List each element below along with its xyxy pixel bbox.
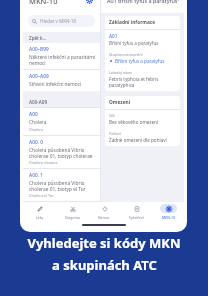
staticText: Léky <box>36 215 44 220</box>
button[interactable]: MKN-10 <box>152 202 184 221</box>
staticText: Cholera classica <box>29 160 58 165</box>
button[interactable]: Settings <box>84 0 95 6</box>
staticText: Diagnóza <box>65 215 80 220</box>
button[interactable]: Věk <box>105 110 180 128</box>
button[interactable]: A00 <box>23 108 100 135</box>
button[interactable]: Latinský název <box>105 67 180 91</box>
button[interactable]: Vyšetření <box>120 202 152 221</box>
staticText: Základní informace <box>109 19 156 26</box>
staticText: a skupinách ATC <box>52 256 157 274</box>
staticText: Žádné omezení dle pohlaví <box>109 137 167 143</box>
staticText: Nemoc <box>98 215 110 220</box>
staticText: MKN-10 <box>162 215 175 220</box>
staticText: A01 Břišní tyfus a paratyfus <box>107 0 178 4</box>
button[interactable]: A00. 0 <box>23 136 100 168</box>
button[interactable]: A01 <box>105 30 180 49</box>
button[interactable]: Léky <box>23 202 56 221</box>
staticText: A00. 0 <box>29 139 43 146</box>
staticText: Zpět k... <box>29 35 47 41</box>
button[interactable]: Skupina onemocnění <box>105 49 180 67</box>
button[interactable]: A00–B99 <box>23 43 100 69</box>
button[interactable]: Favourite <box>178 0 179 5</box>
staticText: Vyhledejte si kódy MKN <box>27 234 181 252</box>
staticText: A00 <box>29 111 38 118</box>
staticText: A00–A09 <box>29 73 49 80</box>
staticText: Omezení <box>109 99 131 106</box>
staticText: A00-A09 <box>29 99 48 105</box>
staticText: Pohlaví <box>109 131 121 136</box>
staticText: Cholera <box>29 119 47 126</box>
staticText: Bez věkového omezení <box>109 119 159 125</box>
staticText: Cholera působená Vibrio cholerae 01, bio… <box>29 147 96 159</box>
staticText: A00. 1 <box>29 172 43 179</box>
button[interactable]: Nemoc <box>88 202 120 221</box>
staticText: MKN-10 <box>29 0 58 6</box>
staticText: Cholera působená Vibrio cholerae 01, bio… <box>29 180 96 192</box>
staticText: Věk <box>109 113 115 118</box>
staticText: Latinský název <box>109 70 133 75</box>
staticText: Skupina onemocnění <box>109 52 143 57</box>
button[interactable]: A00–A09 <box>23 70 100 91</box>
staticText: Břišní tyfus a paratyfus <box>109 40 159 46</box>
staticText: Febris typhoia et febris paratyphica <box>109 76 176 88</box>
staticText: A00–B99 <box>29 46 49 53</box>
staticText: Vyšetření <box>129 215 144 220</box>
button[interactable]: Pohlaví <box>105 128 180 146</box>
staticText: Cholera <box>29 127 43 132</box>
staticText: Hledat v MKN-10 <box>40 18 77 24</box>
button[interactable]: Hledat v MKN-10 <box>28 15 95 27</box>
staticText: Střevní infekční nemoci <box>29 81 82 88</box>
button[interactable]: A00. 1 <box>23 169 100 201</box>
staticText: Cholera el Tor <box>29 193 54 198</box>
staticText: A01 <box>109 33 118 39</box>
staticText: Některé infekční a parazitární nemoci <box>29 54 96 66</box>
staticText: Břišní tyfus a paratyfus <box>115 58 165 64</box>
button[interactable]: Diagnóza <box>56 202 88 221</box>
